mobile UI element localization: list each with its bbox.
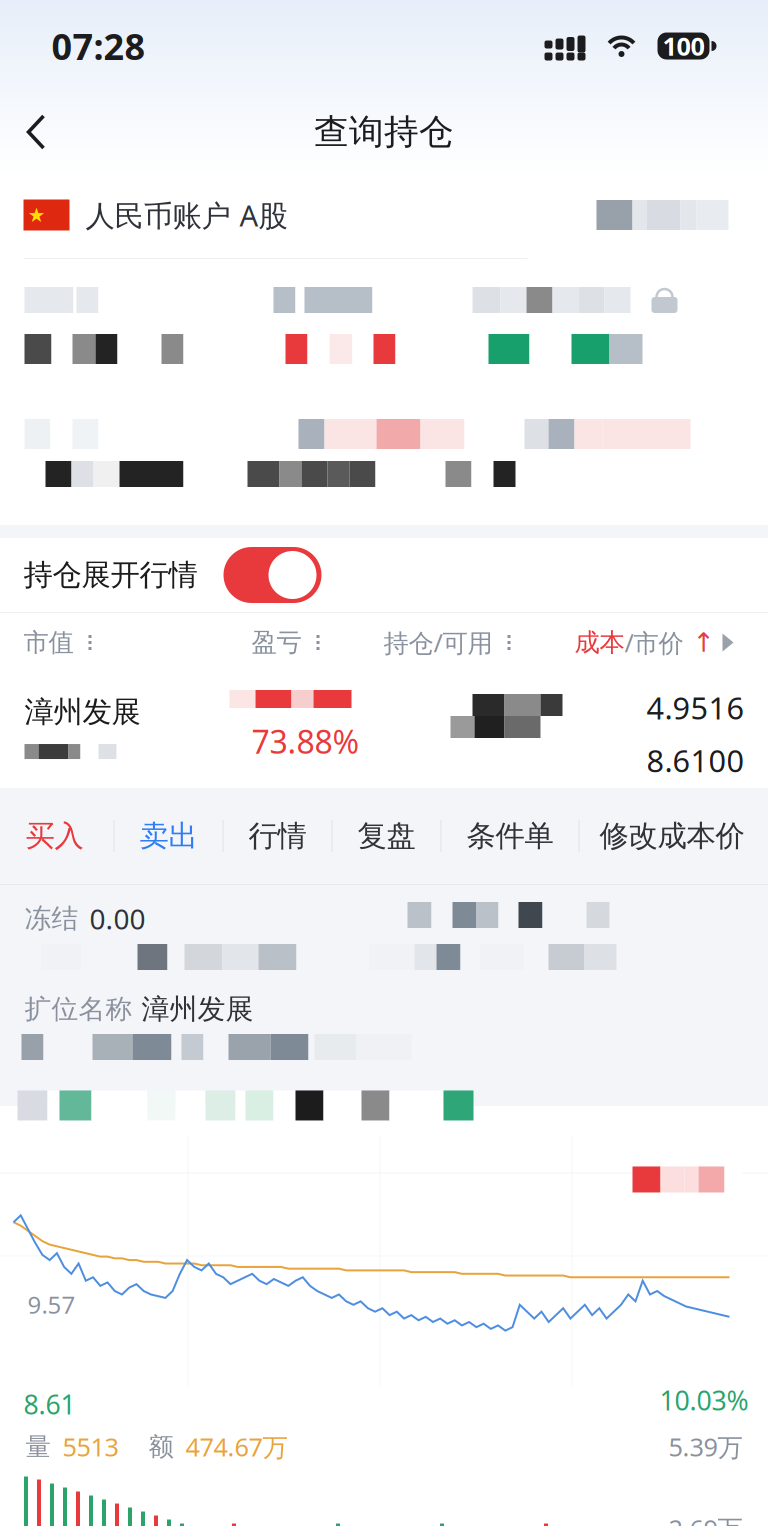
staticText: 100 <box>662 29 704 63</box>
staticText: 8.6100 <box>646 740 744 781</box>
staticText: 07:28 <box>51 22 145 70</box>
button[interactable]: 行情 <box>223 788 331 884</box>
staticText: 9.57 <box>27 1288 75 1320</box>
staticText: 复盘 <box>357 818 415 854</box>
button[interactable]: 盈亏 <box>251 613 383 672</box>
staticText: 漳州发展 <box>24 694 140 730</box>
button[interactable]: 持仓展开行情 <box>0 538 768 612</box>
staticText: 474.67万 <box>185 1430 287 1463</box>
staticText: ★ <box>27 204 45 226</box>
staticText: 持仓展开行情 <box>23 557 197 593</box>
button[interactable]: More columns <box>722 633 733 651</box>
staticText: 市值 <box>23 627 73 658</box>
staticText: 盈亏 <box>251 627 301 658</box>
button[interactable]: 复盘 <box>332 788 440 884</box>
staticText: 成本 <box>574 627 624 658</box>
staticText: 额 <box>148 1431 173 1462</box>
staticText: 10.03% <box>659 1382 748 1418</box>
staticText: 条件单 <box>466 818 553 854</box>
staticText: 量 <box>25 1431 50 1462</box>
button[interactable]: ★ <box>0 172 768 258</box>
staticText: 扩位名称 <box>24 993 132 1026</box>
staticText: 5.39万 <box>668 1430 742 1463</box>
staticText: 行情 <box>248 818 306 854</box>
staticText: 4.9516 <box>646 687 744 728</box>
staticText: 买入 <box>25 818 83 854</box>
button[interactable]: 买入 <box>0 788 113 884</box>
staticText: 查询持仓 <box>314 111 454 153</box>
staticText: 2.69万 <box>668 1511 742 1526</box>
button[interactable]: 修改成本价 <box>579 788 764 884</box>
button[interactable]: 持仓/可用 <box>383 613 574 672</box>
staticText: 73.88% <box>251 720 359 762</box>
button[interactable]: 漳州发展 <box>0 672 768 788</box>
button[interactable]: 市值 <box>23 613 251 672</box>
button[interactable]: 条件单 <box>441 788 578 884</box>
staticText: 持仓/可用 <box>383 626 492 659</box>
staticText: 8.61 <box>23 1386 75 1422</box>
button[interactable]: 成本 <box>574 613 722 672</box>
staticText: /市价 <box>624 626 683 659</box>
staticText: 修改成本价 <box>599 818 744 854</box>
staticText: ↑ <box>692 627 714 658</box>
button[interactable]: Back <box>0 92 77 172</box>
staticText: 人民币账户 A股 <box>85 195 287 234</box>
staticText: 5513 <box>62 1430 118 1463</box>
staticText: 0.00 <box>89 900 145 937</box>
staticText: 冻结 <box>24 902 78 935</box>
staticText: 卖出 <box>139 818 197 854</box>
staticText: 漳州发展 <box>141 992 253 1026</box>
button[interactable]: 卖出 <box>114 788 222 884</box>
